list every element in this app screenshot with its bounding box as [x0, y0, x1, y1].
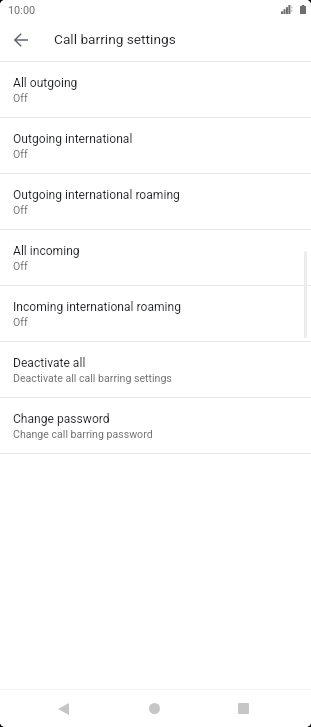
staticText: Deactivate all call barring settings — [13, 372, 172, 384]
button[interactable]: Back — [43, 690, 83, 727]
staticText: All incoming — [13, 244, 80, 258]
staticText: Deactivate all — [13, 356, 86, 370]
staticText: Outgoing international — [13, 132, 133, 146]
staticText: Off — [13, 204, 28, 216]
button[interactable]: Change password — [0, 398, 311, 453]
button[interactable]: Incoming international roaming — [0, 286, 311, 341]
staticText: 10:00 — [8, 4, 36, 17]
button[interactable]: All outgoing — [0, 62, 311, 117]
staticText: Call barring settings — [54, 31, 176, 47]
staticText: Off — [13, 92, 28, 104]
button[interactable]: Back — [7, 26, 35, 54]
button[interactable]: Deactivate all — [0, 342, 311, 397]
button[interactable]: Recent apps — [223, 690, 263, 727]
staticText: Change call barring password — [13, 428, 153, 440]
staticText: Outgoing international roaming — [13, 188, 180, 202]
button[interactable]: Outgoing international roaming — [0, 174, 311, 229]
staticText: All outgoing — [13, 76, 78, 90]
staticText: Off — [13, 148, 28, 160]
staticText: Off — [13, 316, 28, 328]
button[interactable]: Home — [134, 690, 174, 727]
staticText: Incoming international roaming — [13, 300, 182, 314]
staticText: Change password — [13, 412, 110, 426]
button[interactable]: All incoming — [0, 230, 311, 285]
button[interactable]: Outgoing international — [0, 118, 311, 173]
staticText: Off — [13, 260, 28, 272]
